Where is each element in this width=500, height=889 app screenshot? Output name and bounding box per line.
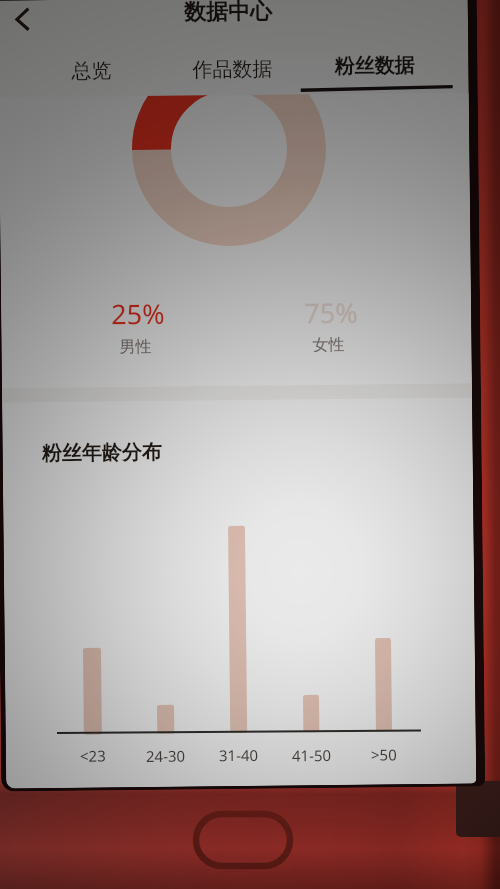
- staticText: >50: [371, 744, 397, 765]
- staticText: <23: [80, 745, 106, 766]
- staticText: 41-50: [292, 745, 332, 765]
- button[interactable]: 粉丝数据: [314, 39, 435, 93]
- staticText: 25%: [111, 295, 165, 332]
- staticText: 粉丝年龄分布: [41, 440, 162, 466]
- staticText: 男性: [119, 337, 152, 357]
- button[interactable]: 总览: [51, 44, 132, 98]
- staticText: 粉丝数据: [334, 53, 415, 79]
- staticText: 总览: [71, 58, 112, 84]
- button[interactable]: 作品数据: [172, 42, 293, 97]
- staticText: 数据中心: [184, 0, 272, 27]
- staticText: 女性: [312, 335, 345, 355]
- staticText: 75%: [304, 294, 358, 331]
- staticText: 31-40: [219, 745, 259, 765]
- button[interactable]: Back: [0, 0, 44, 46]
- staticText: 24-30: [146, 746, 186, 766]
- staticText: 作品数据: [192, 57, 273, 82]
